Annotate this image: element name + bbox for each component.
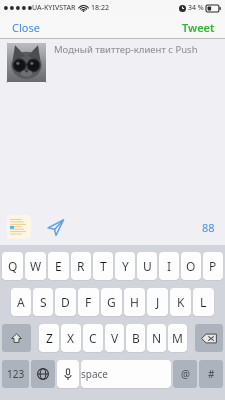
- button[interactable]: D: [55, 288, 76, 316]
- staticText: Y: [122, 258, 129, 274]
- staticText: #: [208, 367, 215, 381]
- staticText: W: [30, 258, 42, 274]
- staticText: O: [186, 258, 196, 274]
- button[interactable]: @: [173, 360, 197, 388]
- button[interactable]: Close: [0, 16, 52, 39]
- staticText: I: [167, 258, 172, 274]
- staticText: @: [181, 367, 190, 381]
- button[interactable]: Q: [2, 252, 23, 280]
- button[interactable]: G: [101, 288, 122, 316]
- staticText: Close: [12, 20, 40, 35]
- button[interactable]: O: [181, 252, 201, 280]
- button[interactable]: Change keyboard language: [31, 360, 55, 388]
- button[interactable]: Shift: [2, 324, 31, 352]
- button[interactable]: P: [203, 252, 223, 280]
- button[interactable]: W: [25, 252, 46, 280]
- button[interactable]: F: [78, 288, 99, 316]
- button[interactable]: J: [147, 288, 168, 316]
- staticText: Z: [46, 330, 53, 346]
- button[interactable]: A: [11, 288, 31, 316]
- button[interactable]: B: [126, 324, 145, 352]
- staticText: J: [156, 294, 160, 310]
- button[interactable]: M: [168, 324, 187, 352]
- staticText: 34 %: [188, 3, 204, 13]
- button[interactable]: L: [193, 288, 214, 316]
- staticText: Q: [8, 258, 18, 274]
- button[interactable]: K: [170, 288, 191, 316]
- button[interactable]: 123: [2, 360, 29, 388]
- button[interactable]: R: [71, 252, 91, 280]
- button[interactable]: E: [48, 252, 69, 280]
- staticText: space: [81, 367, 171, 381]
- button[interactable]: Backspace: [195, 324, 223, 352]
- staticText: T: [100, 258, 107, 274]
- staticText: L: [200, 294, 207, 310]
- staticText: D: [61, 294, 70, 310]
- staticText: X: [67, 330, 75, 346]
- button[interactable]: Tweet: [172, 16, 225, 39]
- button[interactable]: Voice input: [57, 360, 79, 388]
- button[interactable]: Add photo: [7, 215, 31, 239]
- staticText: F: [85, 294, 92, 310]
- staticText: UA-KYIVSTAR: [32, 3, 76, 13]
- staticText: A: [17, 294, 25, 310]
- button[interactable]: T: [93, 252, 113, 280]
- staticText: 18:22: [91, 3, 109, 13]
- staticText: R: [77, 258, 85, 274]
- staticText: E: [55, 258, 62, 274]
- button[interactable]: S: [33, 288, 53, 316]
- button[interactable]: space: [81, 360, 171, 388]
- staticText: P: [209, 258, 217, 274]
- staticText: M: [172, 330, 183, 346]
- button[interactable]: V: [105, 324, 124, 352]
- staticText: N: [152, 330, 162, 346]
- staticText: 123: [7, 367, 25, 381]
- staticText: Модный твиттер-клиент с Push: [54, 43, 198, 56]
- button[interactable]: Z: [39, 324, 59, 352]
- button[interactable]: I: [159, 252, 179, 280]
- staticText: S: [40, 294, 47, 310]
- staticText: H: [130, 294, 139, 310]
- button[interactable]: #: [199, 360, 223, 388]
- staticText: K: [177, 294, 185, 310]
- staticText: C: [89, 330, 97, 346]
- staticText: B: [132, 330, 140, 346]
- button[interactable]: Profile photo: [6, 42, 47, 83]
- staticText: G: [107, 294, 116, 310]
- staticText: U: [143, 258, 152, 274]
- button[interactable]: N: [147, 324, 166, 352]
- button[interactable]: X: [61, 324, 81, 352]
- button[interactable]: C: [83, 324, 103, 352]
- staticText: 88: [202, 220, 215, 235]
- staticText: V: [111, 330, 119, 346]
- button[interactable]: H: [124, 288, 145, 316]
- staticText: Tweet: [182, 20, 215, 35]
- button[interactable]: U: [137, 252, 157, 280]
- button[interactable]: 88: [202, 220, 215, 235]
- button[interactable]: Add location: [44, 216, 66, 238]
- button[interactable]: Y: [115, 252, 135, 280]
